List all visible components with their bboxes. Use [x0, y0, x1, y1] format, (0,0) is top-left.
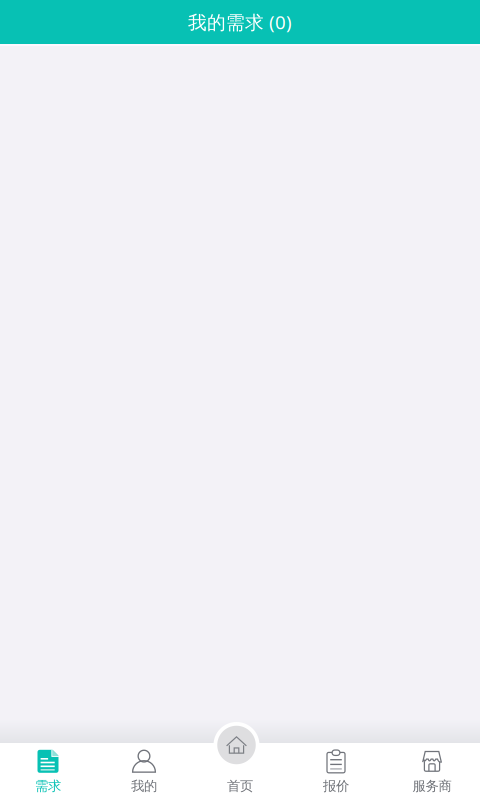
button[interactable]: 首页 — [192, 743, 288, 800]
staticText: 报价 — [323, 778, 349, 794]
staticText: 我的需求 (0) — [188, 10, 292, 34]
staticText: 首页 — [227, 778, 253, 794]
button[interactable]: 需求 — [0, 743, 96, 800]
staticText: 我的 — [131, 778, 157, 794]
staticText: 服务商 — [412, 778, 451, 794]
staticText: 需求 — [35, 778, 61, 794]
button[interactable]: 报价 — [288, 743, 384, 800]
button[interactable]: 我的 — [96, 743, 192, 800]
button[interactable]: 服务商 — [384, 743, 480, 800]
